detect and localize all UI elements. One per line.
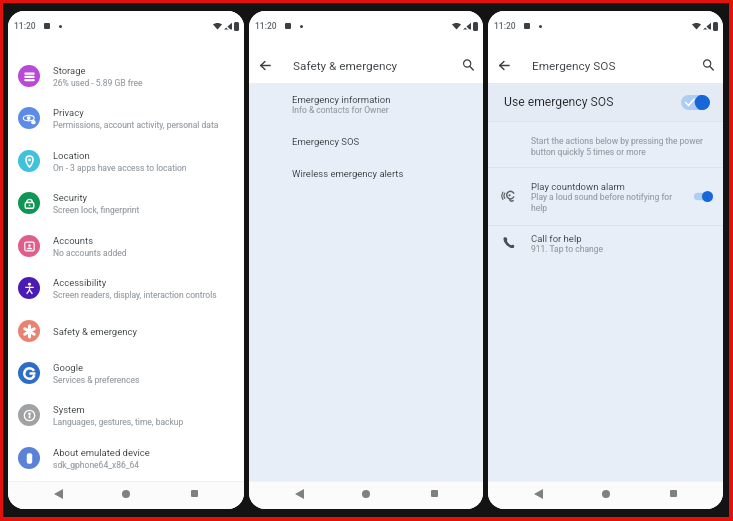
staticText: Privacy (53, 107, 84, 118)
staticText: Safety & emergency (293, 59, 398, 73)
staticText: Services & preferences (53, 375, 140, 385)
button[interactable]: Recent apps (655, 480, 691, 507)
staticText: Safety & emergency (53, 326, 137, 337)
staticText: Wireless emergency alerts (292, 168, 404, 179)
button[interactable]: Back (40, 480, 76, 507)
staticText: Permissions, account activity, personal … (53, 120, 219, 130)
staticText: No accounts added (53, 248, 127, 258)
staticText: Start the actions below by pressing the … (531, 136, 705, 157)
button[interactable]: Storage (8, 55, 244, 97)
staticText: Accounts (53, 235, 94, 246)
staticText: Info & contacts for Owner (292, 105, 389, 115)
button[interactable]: Play countdown alarm (488, 168, 723, 225)
button[interactable]: Home (108, 480, 144, 507)
button[interactable]: About emulated device (8, 437, 244, 479)
staticText: Screen lock, fingerprint (53, 205, 140, 215)
button[interactable]: Search (457, 54, 479, 76)
button[interactable]: Wireless emergency alerts (292, 168, 483, 179)
button[interactable]: Use emergency SOS toggle (681, 95, 710, 110)
button[interactable]: Home (588, 480, 624, 507)
staticText: Play countdown alarm (531, 181, 625, 192)
button[interactable]: Emergency information (292, 94, 483, 115)
button[interactable]: Safety & emergency (8, 310, 244, 352)
button[interactable]: System (8, 394, 244, 436)
staticText: About emulated device (53, 447, 150, 458)
button[interactable]: Navigate up (493, 54, 515, 76)
staticText: Location (53, 150, 90, 161)
button[interactable]: Navigate up (254, 54, 276, 76)
button[interactable]: Location (8, 140, 244, 182)
staticText: Emergency SOS (292, 136, 360, 147)
staticText: sdk_gphone64_x86_64 (53, 460, 140, 470)
staticText: Accessibility (53, 277, 107, 288)
button[interactable]: Recent apps (416, 480, 452, 507)
staticText: Emergency information (292, 94, 391, 105)
button[interactable]: Search (697, 54, 719, 76)
staticText: 26% used - 5.89 GB free (53, 78, 143, 88)
button[interactable]: Accessibility (8, 267, 244, 309)
staticText: Use emergency SOS (504, 95, 614, 109)
staticText: Call for help (531, 233, 582, 244)
button[interactable]: Back (281, 480, 317, 507)
button[interactable]: Emergency SOS (292, 136, 483, 147)
button[interactable]: Google (8, 352, 244, 394)
staticText: On - 3 apps have access to location (53, 163, 187, 173)
staticText: Storage (53, 65, 86, 76)
staticText: 11:20 (255, 21, 277, 31)
button[interactable]: Back (520, 480, 556, 507)
staticText: Play a loud sound before notifying for h… (531, 192, 675, 213)
button[interactable]: Call for help (488, 226, 723, 260)
staticText: Screen readers, display, interaction con… (53, 290, 217, 300)
button[interactable]: Accounts (8, 225, 244, 267)
staticText: 911. Tap to change (531, 244, 604, 254)
button[interactable]: Security (8, 182, 244, 224)
staticText: Google (53, 362, 83, 373)
staticText: System (53, 404, 85, 415)
button[interactable]: Play countdown alarm toggle (694, 191, 713, 202)
button[interactable]: Recent apps (176, 480, 212, 507)
button[interactable]: Home (348, 480, 384, 507)
button[interactable]: Use emergency SOS (488, 83, 723, 121)
button[interactable]: Privacy (8, 97, 244, 139)
staticText: Languages, gestures, time, backup (53, 417, 184, 427)
staticText: 11:20 (14, 21, 36, 31)
staticText: 11:20 (494, 21, 516, 31)
staticText: Security (53, 192, 88, 203)
staticText: Emergency SOS (532, 59, 616, 73)
